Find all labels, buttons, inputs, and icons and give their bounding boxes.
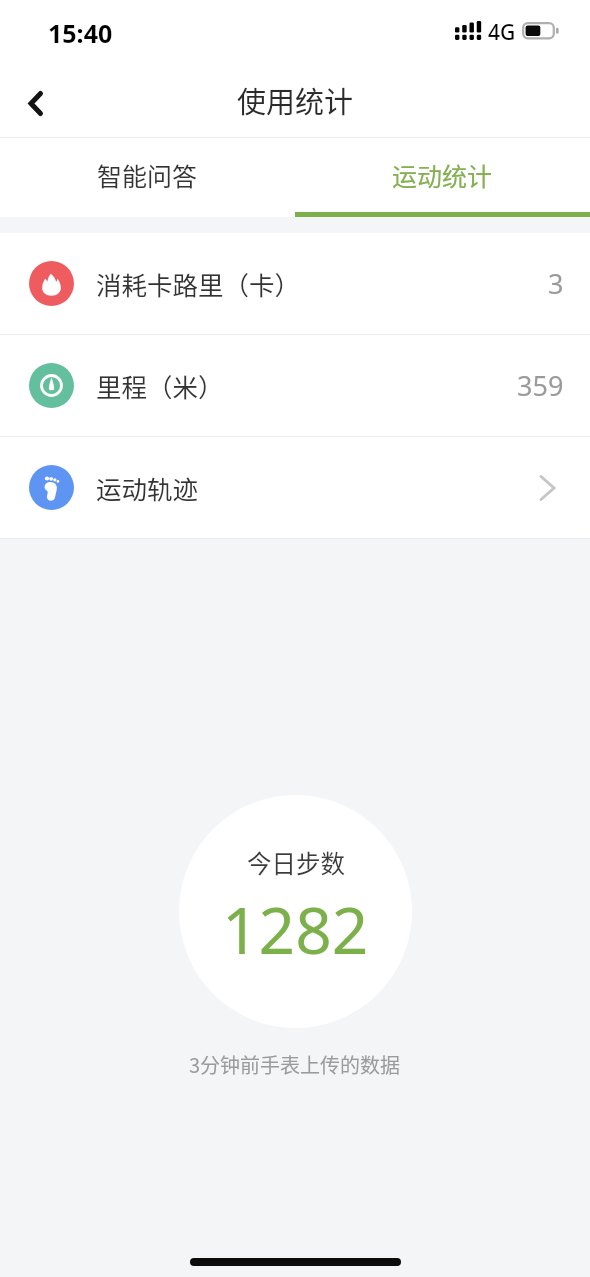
button[interactable]: Back bbox=[0, 62, 72, 138]
staticText: 智能问答 bbox=[97, 157, 198, 193]
staticText: 3分钟前手表上传的数据 bbox=[189, 1050, 401, 1079]
staticText: 1282 bbox=[222, 886, 369, 973]
staticText: 消耗卡路里（卡） bbox=[96, 265, 301, 302]
button[interactable]: 消耗卡路里（卡） bbox=[0, 233, 590, 334]
button[interactable]: 里程（米） bbox=[0, 335, 590, 436]
staticText: 里程（米） bbox=[96, 367, 224, 404]
button[interactable]: 智能问答 bbox=[0, 138, 295, 217]
staticText: 15:40 bbox=[48, 16, 113, 50]
button[interactable]: 今日步数 bbox=[179, 795, 412, 1028]
button[interactable]: 运动轨迹 bbox=[0, 437, 590, 538]
staticText: 今日步数 bbox=[247, 845, 345, 880]
staticText: 359 bbox=[517, 367, 564, 404]
staticText: 使用统计 bbox=[237, 79, 354, 121]
staticText: 运动统计 bbox=[392, 157, 493, 193]
staticText: 运动轨迹 bbox=[96, 469, 199, 506]
staticText: 3 bbox=[548, 265, 564, 302]
staticText: 4G bbox=[488, 18, 516, 47]
button[interactable]: 运动统计 bbox=[295, 138, 590, 217]
